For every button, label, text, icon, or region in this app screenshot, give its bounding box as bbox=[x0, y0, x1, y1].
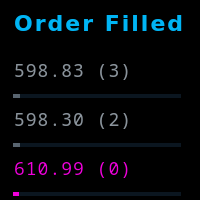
button[interactable]: 598.30 (2) bbox=[0, 107, 200, 153]
button[interactable]: 598.83 (3) bbox=[0, 58, 200, 104]
staticText: 598.83 (3) bbox=[14, 58, 132, 83]
button[interactable]: 610.99 (0) bbox=[0, 156, 200, 200]
staticText: 610.99 (0) bbox=[14, 156, 132, 181]
staticText: 598.30 (2) bbox=[14, 107, 132, 132]
staticText: Order Filled bbox=[14, 11, 186, 37]
